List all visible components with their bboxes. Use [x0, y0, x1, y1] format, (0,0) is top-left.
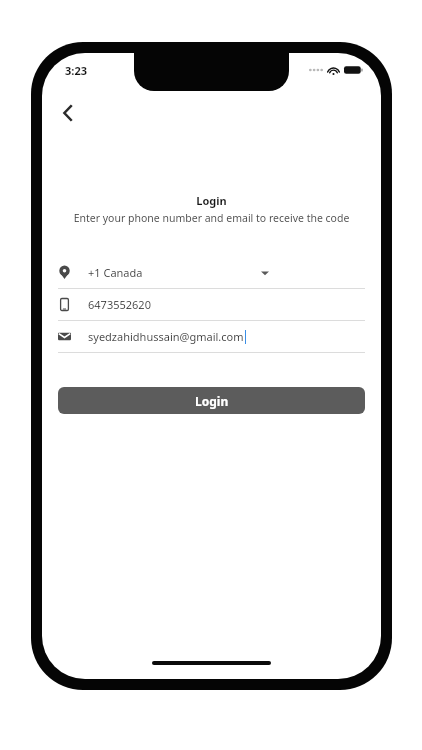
button[interactable]: 6473552620	[58, 289, 365, 321]
staticText: Enter your phone number and email to rec…	[42, 211, 381, 225]
button[interactable]: Login	[58, 387, 365, 414]
staticText: Login	[42, 193, 381, 208]
button[interactable]: Back	[48, 93, 88, 133]
staticText: syedzahidhussain@gmail.com	[88, 329, 244, 344]
staticText: +1 Canada	[88, 265, 143, 280]
staticText: 3:23	[65, 63, 87, 78]
staticText: Login	[195, 393, 229, 409]
staticText: 6473552620	[88, 297, 151, 312]
button[interactable]: +1 Canada	[58, 257, 365, 289]
button[interactable]: syedzahidhussain@gmail.com	[58, 321, 365, 353]
